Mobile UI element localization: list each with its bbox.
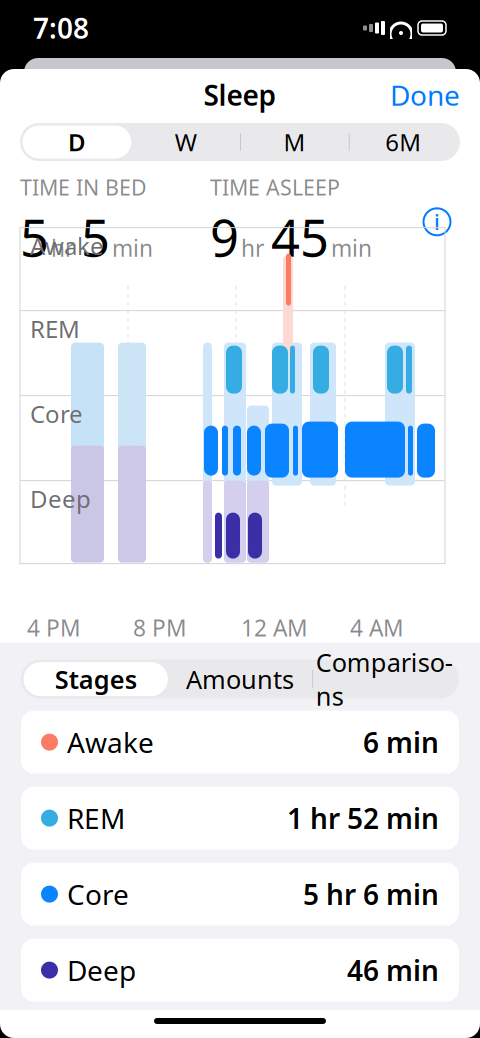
staticText: 9 [210, 203, 239, 271]
staticText: REM [30, 313, 80, 345]
staticText: Core [30, 398, 83, 430]
staticText: hr [241, 233, 264, 263]
staticText: Done [390, 76, 460, 114]
staticText: Awake [67, 723, 154, 761]
button[interactable]: Deep [21, 939, 459, 1002]
staticText: 7:08 [33, 9, 89, 47]
button[interactable]: D [22, 123, 131, 161]
staticText: 4 AM [350, 613, 404, 643]
staticText: 4 PM [27, 613, 81, 643]
staticText: 5 hr 6 min [303, 875, 439, 913]
staticText: W [175, 126, 197, 158]
staticText: TIME ASLEEP [210, 173, 340, 201]
staticText: 1 hr 52 min [287, 799, 439, 837]
staticText: Sleep [203, 76, 276, 114]
staticText: Deep [67, 951, 136, 989]
staticText: 5 [81, 203, 110, 271]
staticText: 12 AM [241, 613, 308, 643]
staticText: Core [67, 875, 129, 913]
button[interactable]: About sleep stages [420, 205, 454, 239]
staticText: min [331, 233, 372, 263]
staticText: D [68, 126, 86, 158]
staticText: 6M [385, 126, 421, 158]
staticText: M [283, 126, 305, 158]
button[interactable]: W [131, 123, 240, 161]
staticText: Amounts [186, 662, 294, 696]
button[interactable]: Stages [23, 660, 168, 699]
staticText: i [434, 208, 440, 236]
button[interactable]: 6M [349, 123, 458, 161]
staticText: 6 min [363, 723, 439, 761]
staticText: min [112, 233, 153, 263]
button[interactable]: Core [21, 863, 459, 926]
staticText: Awake [30, 230, 104, 262]
staticText: Deep [30, 483, 91, 515]
staticText: 46 min [347, 951, 439, 989]
staticText: TIME IN BED [20, 173, 147, 201]
staticText: 8 PM [133, 613, 187, 643]
button[interactable]: Done [382, 70, 468, 120]
staticText: hr [51, 233, 74, 263]
staticText: Stages [55, 662, 137, 696]
button[interactable]: Comparisons [312, 660, 456, 699]
staticText: Comparisons [316, 645, 453, 713]
staticText: REM [67, 799, 125, 837]
staticText: 45 [271, 203, 329, 271]
button[interactable]: Amounts [168, 660, 312, 699]
staticText: 5 [20, 203, 49, 271]
button[interactable]: M [240, 123, 349, 161]
button[interactable]: Awake [21, 711, 459, 774]
button[interactable]: REM [21, 787, 459, 850]
